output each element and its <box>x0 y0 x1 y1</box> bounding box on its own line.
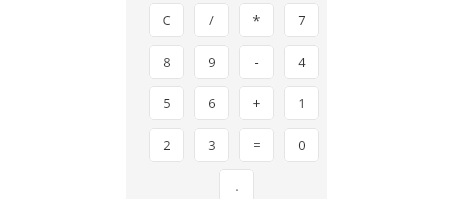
button[interactable]: Key . <box>219 169 254 199</box>
staticText: C <box>162 11 171 29</box>
button[interactable]: Key 6 <box>194 86 229 120</box>
button[interactable]: Key = <box>239 128 274 162</box>
staticText: 7 <box>298 11 306 29</box>
staticText: / <box>209 11 214 29</box>
button[interactable]: Key - <box>239 45 274 79</box>
button[interactable]: Key 0 <box>284 128 319 162</box>
button[interactable]: Key 4 <box>284 45 319 79</box>
staticText: 9 <box>208 53 216 71</box>
button[interactable]: Key 7 <box>284 3 319 37</box>
button[interactable]: Key / <box>194 3 229 37</box>
button[interactable]: Key * <box>239 3 274 37</box>
button[interactable]: Key C <box>149 3 184 37</box>
staticText: - <box>254 53 259 71</box>
staticText: 0 <box>298 136 306 154</box>
staticText: + <box>252 94 261 113</box>
staticText: 6 <box>208 94 216 112</box>
button[interactable]: Key + <box>239 86 274 120</box>
staticText: 3 <box>208 136 216 154</box>
button[interactable]: Key 9 <box>194 45 229 79</box>
button[interactable]: Key 5 <box>149 86 184 120</box>
staticText: 2 <box>163 136 171 154</box>
button[interactable]: Key 3 <box>194 128 229 162</box>
staticText: 1 <box>298 94 306 112</box>
button[interactable]: Key 8 <box>149 45 184 79</box>
staticText: . <box>235 177 239 195</box>
staticText: 4 <box>298 53 306 71</box>
staticText: 8 <box>163 53 171 71</box>
button[interactable]: Key 2 <box>149 128 184 162</box>
staticText: 5 <box>163 94 171 112</box>
staticText: = <box>253 136 261 154</box>
button[interactable]: Key 1 <box>284 86 319 120</box>
staticText: * <box>252 10 261 30</box>
